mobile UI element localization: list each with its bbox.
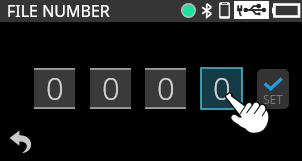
button[interactable]: Back: [6, 127, 38, 155]
staticText: 0: [157, 67, 175, 108]
staticText: SET: [263, 91, 283, 107]
button[interactable]: 0: [34, 68, 75, 109]
button[interactable]: 0: [90, 68, 131, 109]
button[interactable]: 0: [145, 68, 186, 109]
staticText: FILE NUMBER: [7, 0, 110, 22]
button[interactable]: 0: [201, 68, 242, 109]
staticText: 0: [46, 67, 64, 108]
button[interactable]: SET: [257, 69, 289, 109]
staticText: 0: [213, 67, 231, 108]
staticText: 0: [102, 67, 120, 108]
